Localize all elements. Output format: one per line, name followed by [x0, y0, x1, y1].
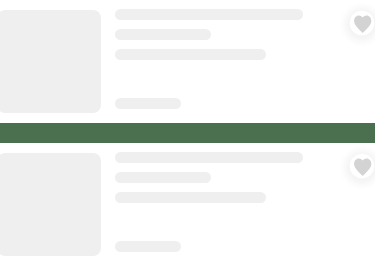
button[interactable]: Favorite: [338, 0, 375, 47]
button[interactable]: Favorite: [0, 0, 375, 123]
button[interactable]: Favorite: [338, 142, 375, 190]
button[interactable]: Favorite: [0, 143, 375, 266]
